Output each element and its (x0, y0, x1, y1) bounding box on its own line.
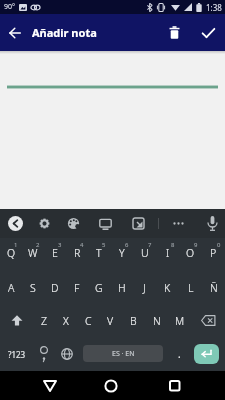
staticText: I (166, 246, 170, 260)
button[interactable] (33, 337, 55, 371)
button[interactable] (165, 210, 192, 237)
button[interactable] (7, 71, 218, 95)
staticText: Q (7, 246, 16, 260)
staticText: ?123 (8, 349, 26, 360)
staticText: H (118, 281, 126, 295)
staticText: W (28, 246, 38, 260)
button[interactable]: D (44, 271, 66, 304)
staticText: G (95, 281, 103, 295)
staticText: R (74, 246, 81, 260)
staticText: ES · EN (112, 349, 135, 359)
button[interactable] (125, 210, 152, 237)
button[interactable]: I (156, 238, 179, 271)
button[interactable]: C (77, 304, 99, 337)
button[interactable] (160, 371, 189, 400)
button[interactable]: S (22, 271, 44, 304)
button[interactable]: E (44, 238, 66, 271)
button[interactable]: O (179, 238, 202, 271)
staticText: 3 (58, 241, 62, 249)
button[interactable]: Y (110, 238, 133, 271)
button[interactable] (31, 210, 58, 237)
button[interactable]: Z (33, 304, 55, 337)
button[interactable]: N (145, 304, 168, 337)
staticText: 0 (217, 241, 221, 249)
button[interactable]: V (99, 304, 122, 337)
button[interactable]: T (88, 238, 110, 271)
staticText: 7 (148, 241, 152, 249)
staticText: L (188, 281, 194, 295)
button[interactable] (194, 344, 219, 364)
staticText: 2 (36, 241, 40, 249)
button[interactable]: R (66, 238, 88, 271)
staticText: 5 (102, 241, 106, 249)
staticText: J (143, 281, 146, 295)
button[interactable] (92, 210, 119, 237)
button[interactable] (96, 371, 125, 400)
button[interactable]: P (202, 238, 225, 271)
staticText: P (210, 246, 217, 260)
button[interactable] (55, 337, 78, 371)
button[interactable]: M (168, 304, 191, 337)
staticText: 4 (80, 241, 84, 249)
staticText: T (96, 246, 102, 260)
button[interactable] (60, 210, 87, 237)
button[interactable]: B (122, 304, 145, 337)
staticText: 9 (194, 241, 198, 249)
staticText: 1:38 (206, 2, 222, 13)
button[interactable] (159, 14, 189, 51)
button[interactable] (199, 210, 225, 237)
button[interactable]: F (66, 271, 88, 304)
staticText: A (8, 281, 15, 295)
button[interactable]: H (110, 271, 133, 304)
button[interactable]: Q (0, 238, 22, 271)
staticText: Y (119, 246, 125, 260)
button[interactable]: X (55, 304, 77, 337)
staticText: Añadir nota (32, 25, 97, 40)
staticText: 8 (171, 241, 175, 249)
staticText: D (51, 281, 59, 295)
staticText: 6 (125, 241, 129, 249)
staticText: F (74, 281, 80, 295)
staticText: K (164, 281, 171, 295)
staticText: V (107, 314, 114, 328)
button[interactable] (0, 304, 33, 337)
staticText: 1 (14, 241, 18, 249)
staticText: Ñ (210, 281, 218, 295)
staticText: C (85, 314, 92, 328)
button[interactable] (191, 304, 225, 337)
button[interactable]: ES · EN (83, 345, 163, 362)
staticText: U (141, 246, 149, 260)
button[interactable] (36, 371, 64, 400)
staticText: M (175, 314, 185, 328)
staticText: Z (41, 314, 48, 328)
button[interactable] (193, 14, 223, 51)
staticText: B (130, 314, 137, 328)
button[interactable]: L (179, 271, 202, 304)
button[interactable]: K (156, 271, 179, 304)
button[interactable]: W (22, 238, 44, 271)
staticText: . (178, 347, 181, 361)
staticText: X (63, 314, 69, 328)
button[interactable]: A (0, 271, 22, 304)
button[interactable] (2, 210, 29, 237)
staticText: O (186, 246, 195, 260)
button[interactable]: ?123 (0, 337, 33, 371)
button[interactable]: U (133, 238, 156, 271)
staticText: S (30, 281, 36, 295)
button[interactable]: . (168, 337, 191, 371)
staticText: 90° (4, 2, 16, 12)
button[interactable]: G (88, 271, 110, 304)
button[interactable] (0, 14, 30, 51)
button[interactable]: Ñ (202, 271, 225, 304)
staticText: N (153, 314, 161, 328)
button[interactable]: J (133, 271, 156, 304)
staticText: E (52, 246, 58, 260)
